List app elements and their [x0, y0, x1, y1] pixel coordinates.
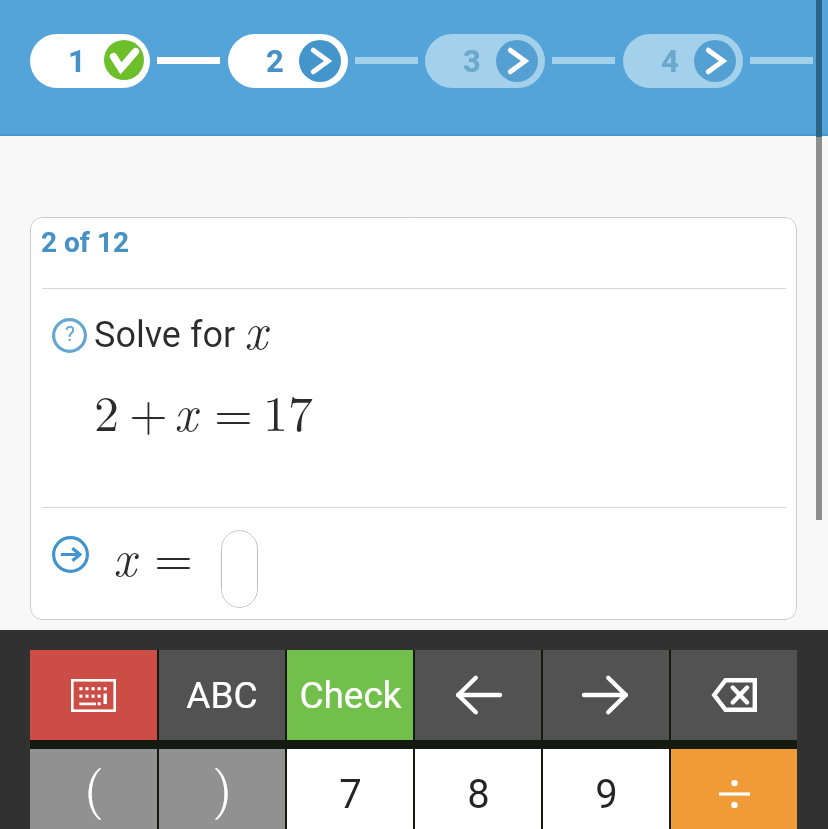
button[interactable]: 7 [287, 749, 413, 829]
staticText: x [244, 293, 268, 364]
button[interactable]: Help [52, 318, 87, 353]
staticText: 4 [661, 43, 679, 79]
staticText: 3 [463, 43, 481, 79]
staticText: 7 [339, 771, 362, 818]
staticText: 2 [94, 375, 119, 446]
staticText: ? [65, 322, 75, 347]
button[interactable]: 8 [415, 749, 541, 829]
button[interactable]: Check [287, 650, 413, 740]
staticText: 8 [467, 771, 490, 818]
button[interactable]: 1 [30, 34, 150, 88]
button[interactable]: Keyboard [30, 650, 157, 740]
staticText: 2 of 12 [41, 226, 130, 259]
button[interactable]: Move cursor left [415, 650, 541, 740]
button[interactable]: 4 [623, 34, 743, 88]
button[interactable]: 9 [543, 749, 669, 829]
button[interactable] [221, 530, 258, 608]
staticText: Check [299, 674, 402, 717]
staticText: 17 [263, 375, 313, 446]
staticText: + [129, 375, 168, 446]
button[interactable]: Divide [671, 749, 797, 829]
staticText: = [154, 520, 193, 591]
staticText: ABC [186, 674, 258, 717]
button[interactable]: Delete [671, 650, 797, 740]
staticText: = [214, 375, 253, 446]
staticText: x [174, 375, 198, 446]
staticText: ( [83, 748, 104, 822]
staticText: 1 [68, 43, 86, 79]
button[interactable]: ) [159, 749, 285, 829]
button[interactable]: 2 [228, 34, 348, 88]
button[interactable]: Show answer [52, 536, 89, 573]
staticText: ) [212, 748, 233, 822]
staticText: 9 [595, 771, 618, 818]
staticText: 2 [266, 43, 284, 79]
staticText: Solve for [94, 314, 236, 356]
button[interactable]: Move cursor right [543, 650, 669, 740]
button[interactable]: 3 [425, 34, 545, 88]
button[interactable]: ( [30, 749, 157, 829]
button[interactable]: ABC [159, 650, 285, 740]
staticText: x [113, 520, 137, 591]
